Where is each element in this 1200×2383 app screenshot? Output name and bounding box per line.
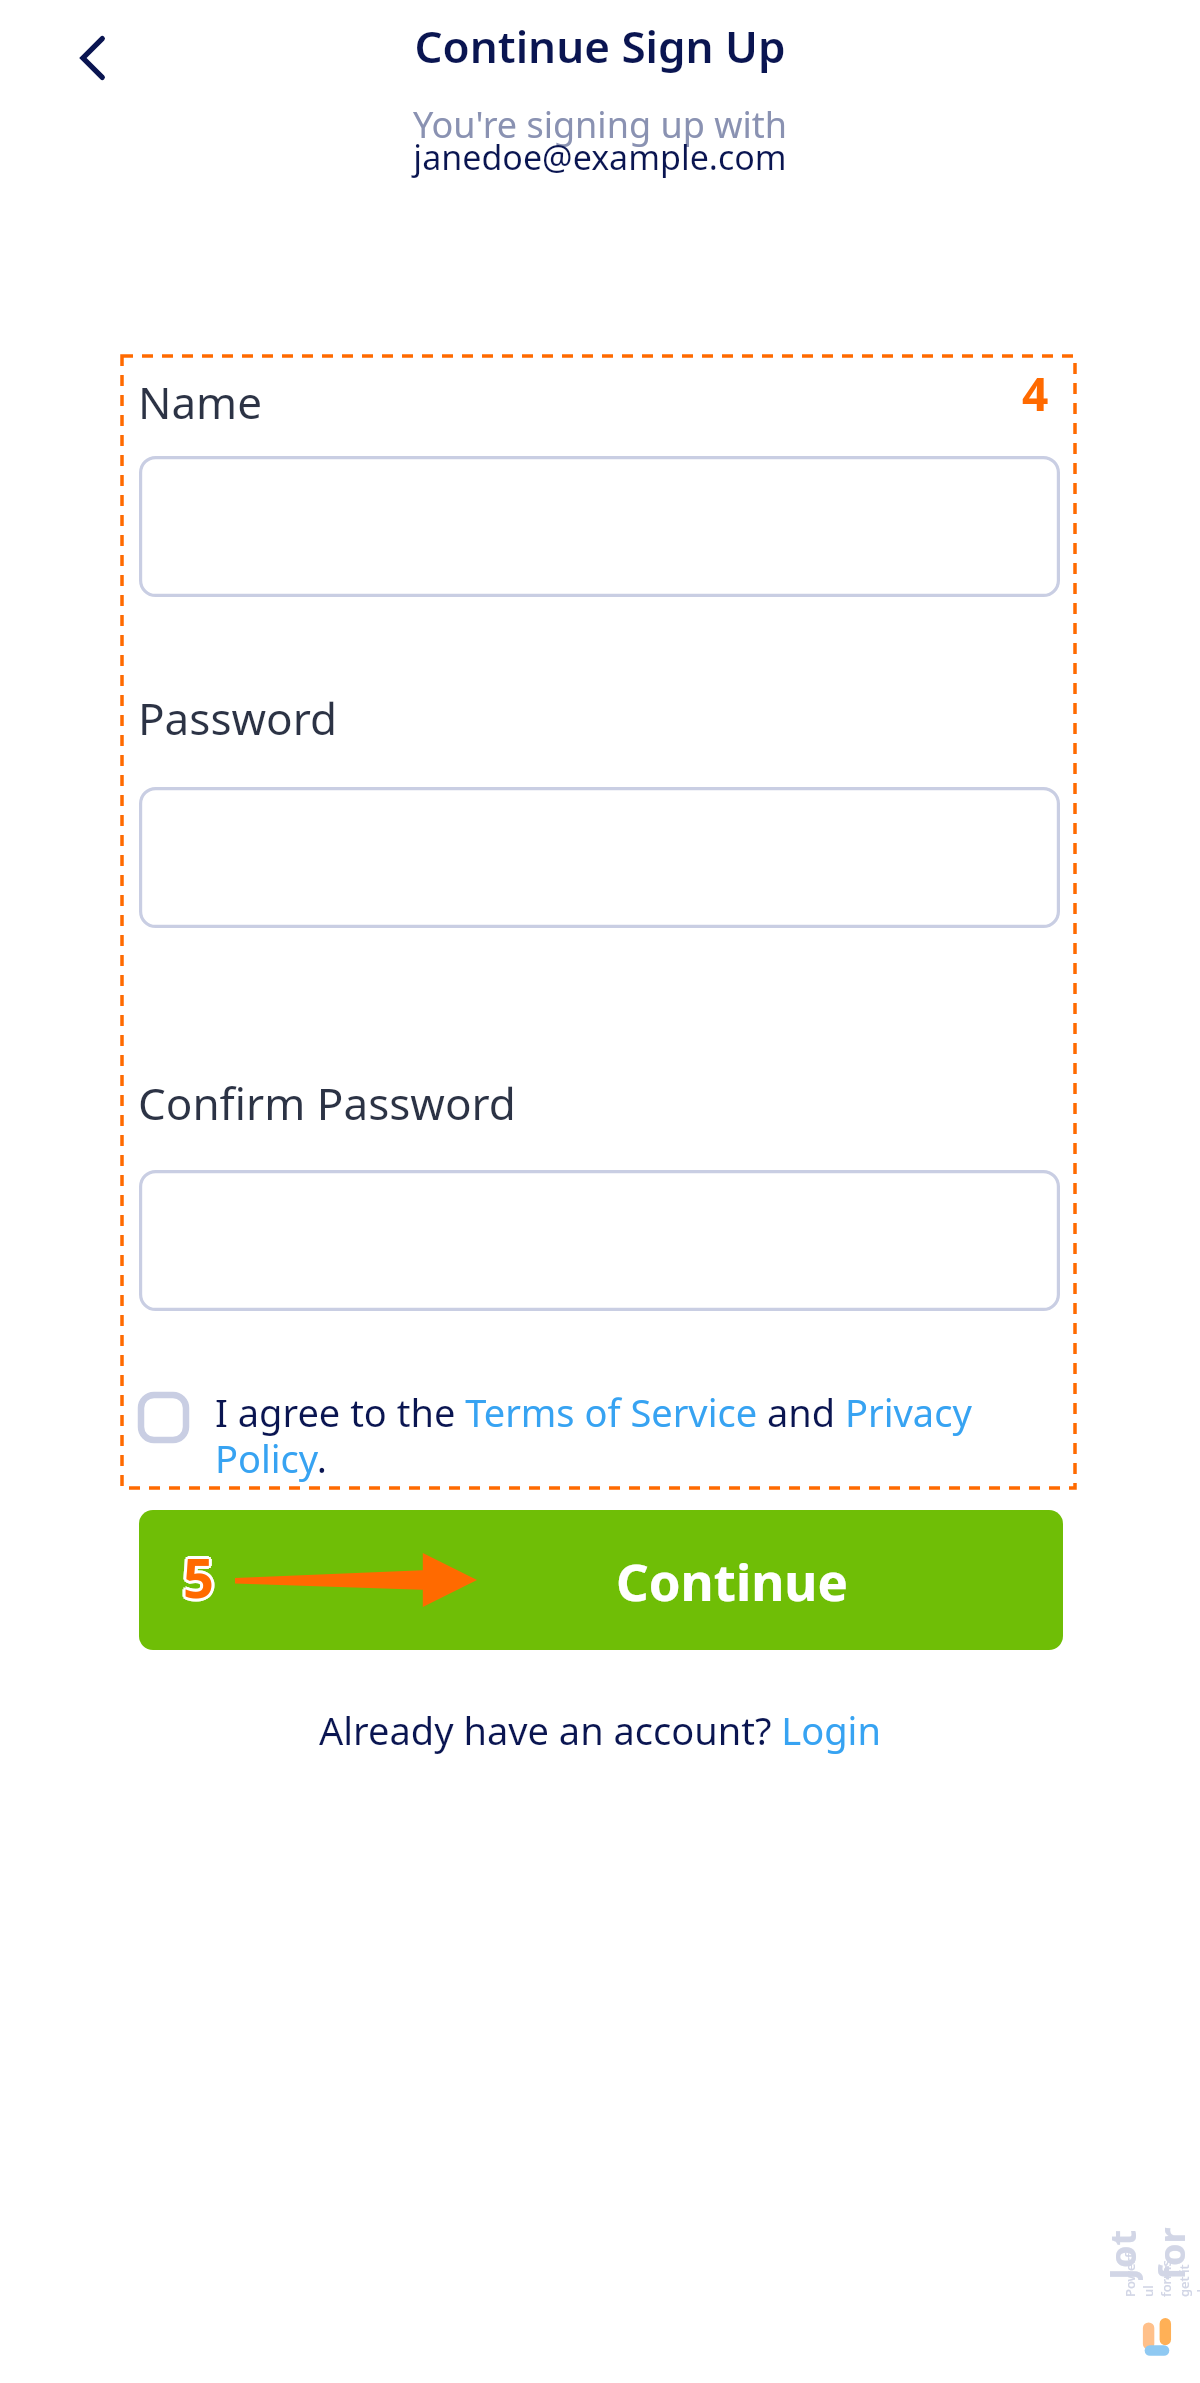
staticText: 4 — [1022, 362, 1049, 425]
staticText: Jotform — [1098, 2220, 1200, 2280]
staticText: 4 — [1020, 364, 1047, 427]
staticText: Continue Sign Up — [414, 16, 786, 76]
staticText: Password — [138, 688, 338, 748]
staticText: 4 — [1022, 359, 1049, 422]
staticText: 4 — [1020, 360, 1047, 423]
staticText: 4 — [1022, 365, 1049, 428]
button[interactable] — [139, 1170, 1060, 1311]
staticText: Powerful forms get it done — [1121, 2253, 1200, 2297]
staticText: 4 — [1024, 360, 1051, 423]
button[interactable]: Back — [52, 16, 136, 100]
button[interactable]: I agree to the Terms of Service and Priv… — [138, 1386, 1063, 1484]
staticText: janedoe@example.com — [413, 134, 787, 180]
staticText: I agree to the Terms of Service and Priv… — [215, 1386, 1063, 1484]
staticText: Name — [138, 372, 263, 432]
staticText: 4 — [1024, 364, 1051, 427]
staticText: 5 — [186, 1540, 217, 1614]
staticText: 5 — [185, 1542, 216, 1616]
staticText: 5 — [181, 1538, 212, 1612]
staticText: 5 — [181, 1542, 212, 1616]
staticText: 4 — [1019, 362, 1046, 425]
button[interactable]: 5 — [139, 1510, 1063, 1650]
button[interactable] — [139, 456, 1060, 597]
staticText: 5 — [180, 1540, 211, 1614]
staticText: Confirm Password — [138, 1073, 516, 1133]
staticText: 5 — [183, 1537, 214, 1611]
staticText: 5 — [183, 1543, 214, 1617]
button[interactable] — [139, 787, 1060, 928]
staticText: You're signing up with — [413, 100, 787, 149]
button[interactable]: Already have an account? Login — [319, 1704, 881, 1756]
staticText: 4 — [1025, 362, 1052, 425]
staticText: 5 — [185, 1538, 216, 1612]
staticText: 5 — [183, 1540, 214, 1614]
staticText: Continue — [616, 1546, 848, 1615]
